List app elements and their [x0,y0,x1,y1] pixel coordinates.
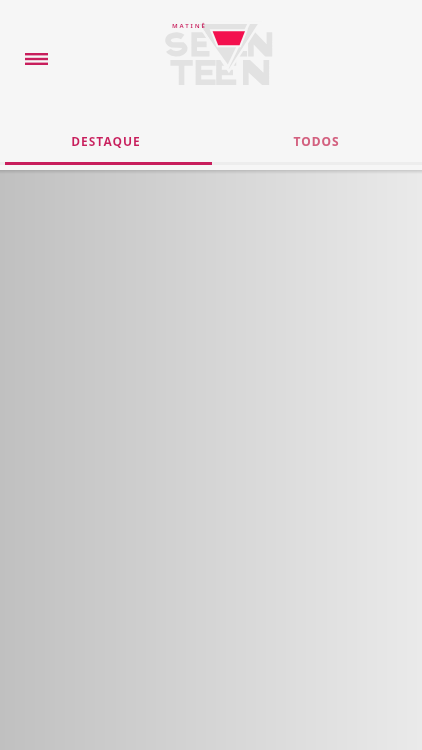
staticText: TODOS [293,133,340,149]
staticText: DESTAQUE [71,133,141,149]
button[interactable]: Open navigation menu [14,36,59,81]
staticText: MATINÊ [172,22,207,30]
button[interactable]: TODOS [211,112,422,170]
button[interactable]: DESTAQUE [0,112,211,170]
